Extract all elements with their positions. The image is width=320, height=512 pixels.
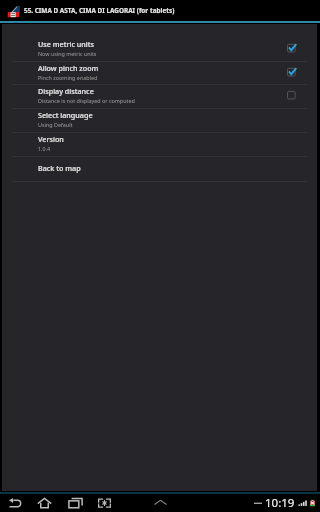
staticText: 10:19 [265,495,295,511]
staticText: Version [38,134,64,144]
staticText: Back to map [38,163,81,173]
button[interactable]: Back [6,494,24,512]
staticText: Select language [38,110,93,120]
button[interactable]: Back to map [2,157,317,181]
button[interactable]: Use metric units [2,38,317,61]
staticText: Allow pinch zoom [38,63,99,73]
button[interactable]: Home [35,494,53,512]
button[interactable]: Select language [2,109,317,132]
staticText: Using Default [38,121,73,128]
staticText: Use metric units [38,39,95,49]
button[interactable]: Allow pinch zoom [2,62,317,84]
staticText: Distance is not displayed or computed [38,97,135,104]
button[interactable]: Screenshot [95,494,113,512]
button[interactable]: Display distance [2,85,317,108]
staticText: Pinch zooming enabled [38,74,98,81]
button[interactable]: Version [2,133,317,156]
staticText: 55. CIMA D ASTA, CIMA DI LAGORAI (for ta… [24,6,175,15]
button[interactable]: Recent apps [66,494,84,512]
staticText: Now using metric units [38,50,97,57]
staticText: Display distance [38,86,94,96]
staticText: 1.0.4 [38,145,51,152]
button[interactable]: Show notifications [151,494,169,512]
